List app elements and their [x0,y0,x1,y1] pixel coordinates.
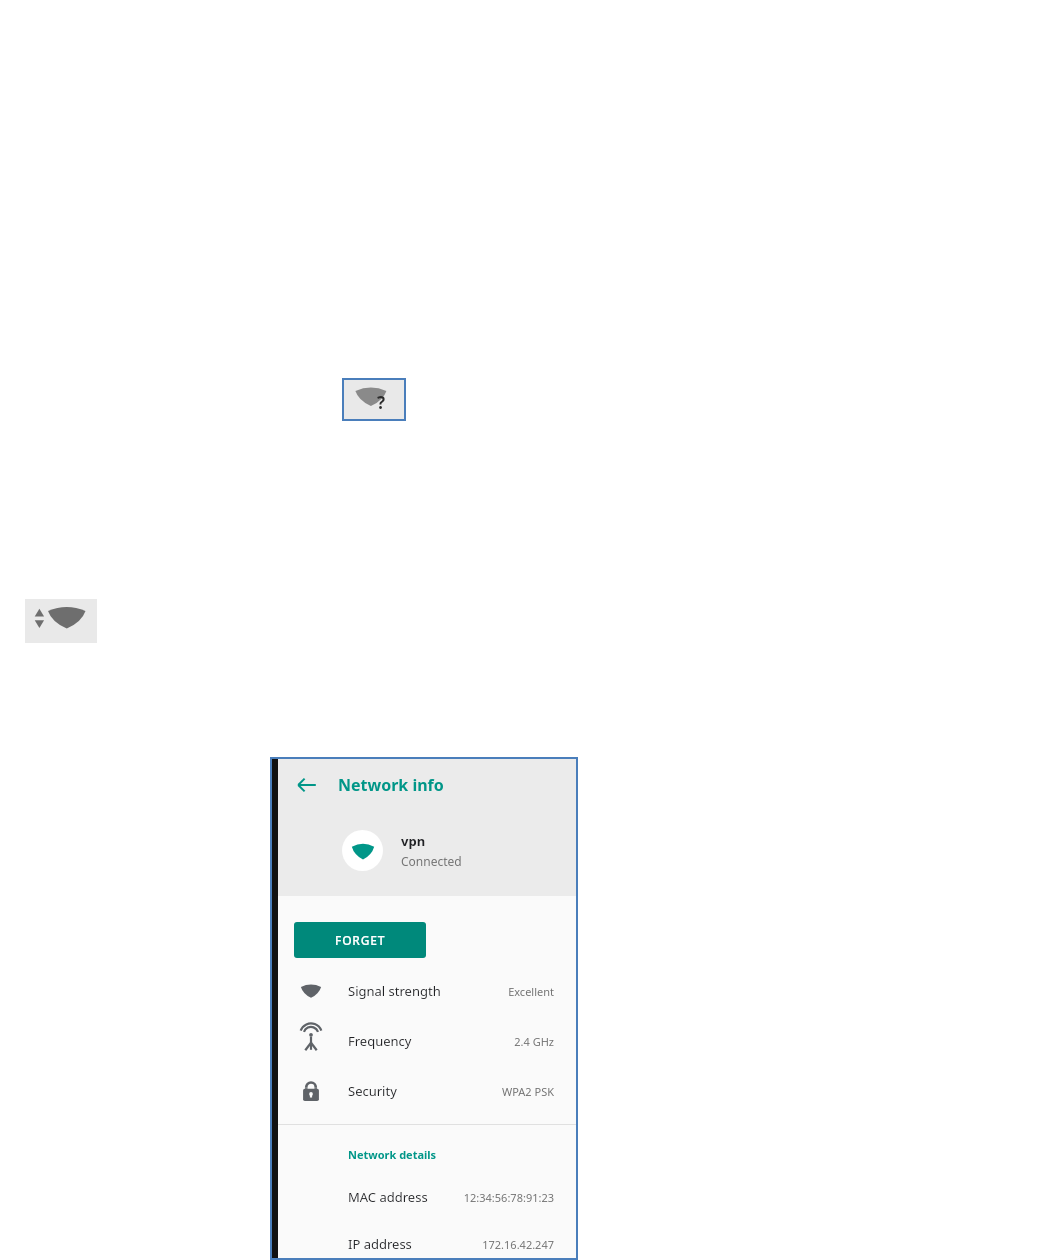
staticText: vpn [401,832,426,850]
staticText: 2.4 GHz [514,1034,554,1049]
staticText: ? [377,391,386,414]
staticText: Security [348,1082,397,1100]
staticText: IP address [348,1235,412,1253]
button[interactable]: FORGET [294,922,426,958]
staticText: Excellent [508,984,554,999]
button[interactable]: vpn [278,811,576,889]
button[interactable]: Back [290,768,324,802]
button[interactable]: Wi-Fi activity [25,599,97,643]
staticText: FORGET [335,932,386,948]
staticText: Network info [338,774,444,796]
button[interactable]: IP address [278,1230,576,1258]
staticText: Signal strength [348,982,441,1000]
button[interactable]: Security [278,1066,576,1116]
staticText: Frequency [348,1032,412,1050]
button[interactable]: Frequency [278,1016,576,1066]
button[interactable]: MAC address [278,1180,576,1214]
staticText: Network details [348,1147,437,1162]
staticText: WPA2 PSK [501,1084,554,1099]
staticText: Connected [401,853,462,869]
button[interactable]: Signal strength [278,966,576,1016]
button[interactable]: Wi-Fi unknown [343,379,405,420]
staticText: MAC address [348,1188,428,1206]
staticText: 172.16.42.247 [482,1237,554,1252]
staticText: 12:34:56:78:91:23 [463,1190,554,1205]
